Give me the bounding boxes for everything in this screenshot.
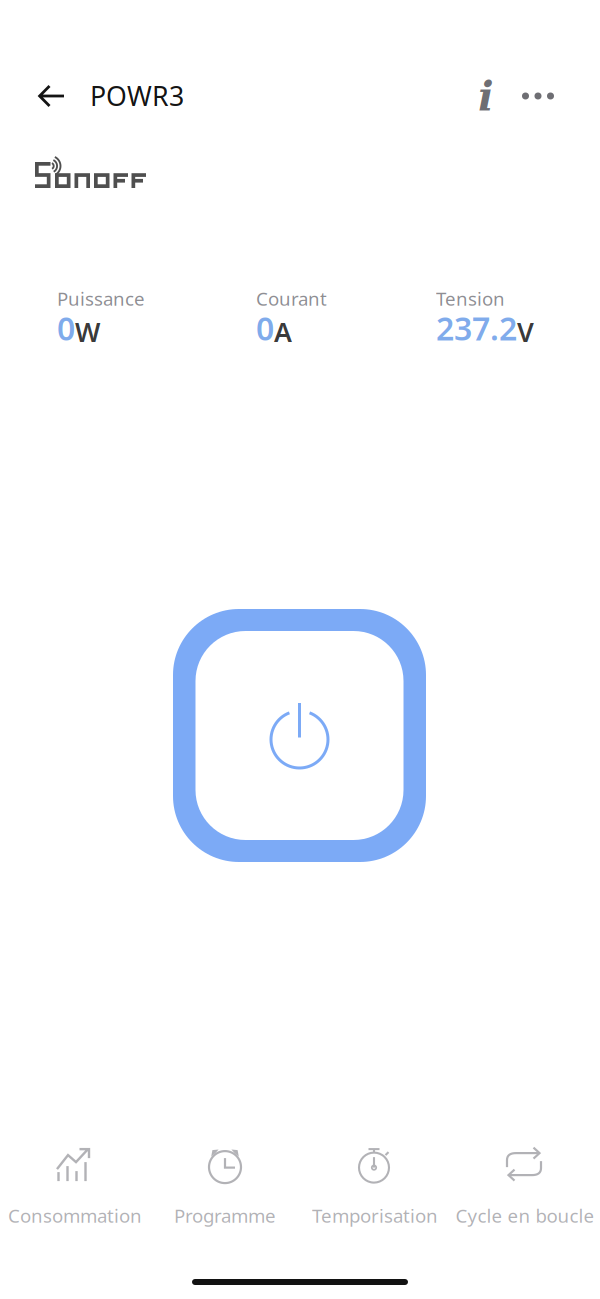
button[interactable]: Power bbox=[173, 609, 426, 862]
staticText: Courant bbox=[256, 286, 327, 311]
staticText: Consommation bbox=[8, 1203, 142, 1228]
button[interactable]: Programme bbox=[150, 1140, 300, 1232]
button[interactable]: Device info bbox=[466, 74, 506, 118]
button[interactable]: Back bbox=[26, 74, 78, 118]
staticText: 0 bbox=[57, 307, 75, 349]
staticText: Temporisation bbox=[312, 1203, 438, 1228]
button[interactable]: Consommation bbox=[0, 1140, 150, 1232]
staticText: Programme bbox=[174, 1203, 276, 1228]
staticText: POWR3 bbox=[90, 78, 184, 113]
button[interactable]: Temporisation bbox=[300, 1140, 450, 1232]
staticText: 237.2 bbox=[436, 307, 517, 349]
staticText: Tension bbox=[436, 286, 505, 311]
staticText: Cycle en boucle bbox=[455, 1203, 594, 1228]
button[interactable]: Cycle en boucle bbox=[450, 1140, 600, 1232]
staticText: V bbox=[517, 314, 534, 349]
button[interactable]: More options bbox=[516, 74, 560, 118]
staticText: i bbox=[478, 72, 494, 120]
staticText: A bbox=[274, 314, 292, 349]
staticText: W bbox=[75, 314, 100, 349]
staticText: 0 bbox=[256, 307, 274, 349]
staticText: Puissance bbox=[57, 286, 145, 311]
